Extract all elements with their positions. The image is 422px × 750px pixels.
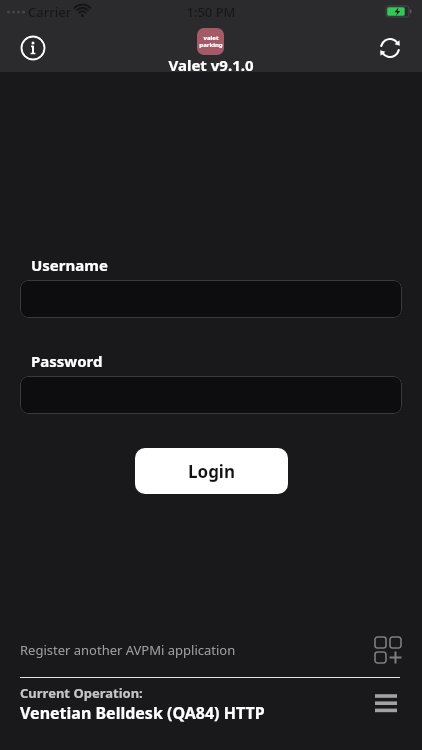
button[interactable]: Register another AVPMi application: [0, 632, 422, 668]
staticText: Carrier: [28, 3, 72, 21]
staticText: Username: [31, 255, 108, 275]
staticText: valet parking: [199, 34, 223, 49]
button[interactable]: [20, 280, 402, 318]
staticText: Venetian Belldesk (QA84) HTTP: [20, 702, 265, 724]
button[interactable]: [20, 376, 402, 414]
staticText: Valet v9.1.0: [0, 55, 422, 75]
staticText: Register another AVPMi application: [20, 641, 236, 659]
staticText: Current Operation:: [20, 684, 143, 702]
button[interactable]: [372, 690, 400, 718]
staticText: Password: [31, 351, 103, 371]
button[interactable]: [20, 35, 46, 61]
staticText: Login: [188, 460, 236, 483]
button[interactable]: [376, 34, 404, 62]
staticText: 1:50 PM: [0, 3, 422, 21]
button[interactable]: Login: [135, 448, 288, 494]
